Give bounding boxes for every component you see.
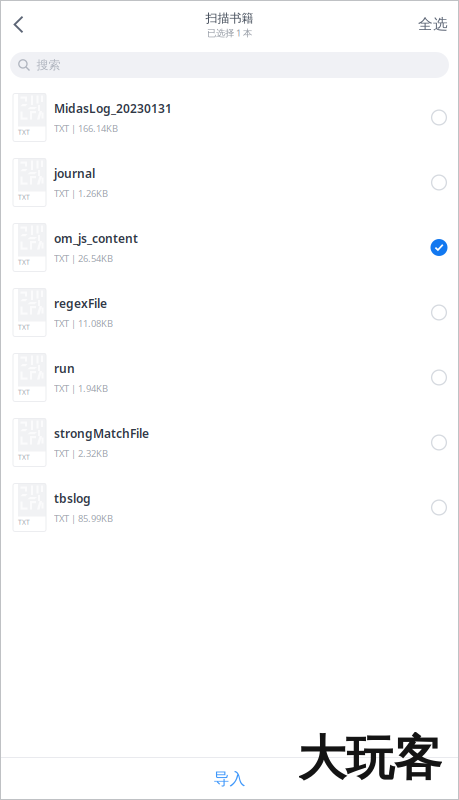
button[interactable]: TXT <box>0 215 459 280</box>
button[interactable]: 导入 <box>0 758 459 800</box>
staticText: TXT | 1.26KB <box>54 187 108 200</box>
staticText: TXT | 85.99KB <box>54 512 113 525</box>
staticText: 扫描书籍 <box>205 11 253 26</box>
staticText: TXT <box>18 388 30 396</box>
staticText: 已选择 1 本 <box>207 27 252 39</box>
button[interactable]: TXT <box>0 345 459 410</box>
staticText: 导入 <box>213 769 245 789</box>
staticText: run <box>54 360 75 376</box>
staticText: 全选 <box>418 15 448 33</box>
staticText: 大玩客 <box>298 729 442 788</box>
staticText: TXT <box>18 518 30 526</box>
staticText: TXT <box>18 453 30 461</box>
staticText: TXT | 166.14KB <box>54 122 118 135</box>
staticText: tbslog <box>54 490 91 506</box>
staticText: journal <box>54 165 95 181</box>
button[interactable]: TXT <box>0 85 459 150</box>
button[interactable]: TXT <box>0 410 459 475</box>
staticText: strongMatchFile <box>54 425 149 441</box>
staticText: TXT <box>18 323 30 331</box>
button[interactable]: Back <box>0 2 37 46</box>
staticText: TXT <box>18 193 30 201</box>
staticText: om_js_content <box>54 230 138 246</box>
staticText: MidasLog_20230131 <box>54 100 172 116</box>
staticText: TXT | 11.08KB <box>54 317 113 330</box>
staticText: TXT | 26.54KB <box>54 252 113 265</box>
staticText: TXT | 2.32KB <box>54 447 108 460</box>
button[interactable]: 搜索 <box>10 52 449 78</box>
button[interactable]: 全选 <box>390 2 459 46</box>
staticText: TXT <box>18 128 30 136</box>
staticText: TXT | 1.94KB <box>54 382 108 395</box>
button[interactable]: TXT <box>0 280 459 345</box>
staticText: regexFile <box>54 295 107 311</box>
staticText: TXT <box>18 258 30 266</box>
button[interactable]: TXT <box>0 475 459 540</box>
staticText: 搜索 <box>36 58 60 72</box>
button[interactable]: TXT <box>0 150 459 215</box>
